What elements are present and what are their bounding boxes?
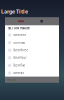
staticText: Item three	[13, 48, 28, 52]
staticText: Footer	[7, 78, 16, 81]
staticText: Item one	[13, 33, 26, 37]
button[interactable]: Item two	[5, 39, 59, 46]
staticText: Item four	[13, 56, 26, 59]
staticText: Item two	[13, 41, 25, 44]
staticText: SECTION HEADER	[8, 26, 30, 30]
button[interactable]: Item five	[5, 62, 59, 69]
staticText: Item six	[13, 71, 23, 75]
staticText: Large Title	[1, 8, 28, 15]
button[interactable]: Item three	[5, 46, 59, 54]
staticText: Item five	[13, 64, 25, 67]
button[interactable]: Item six	[5, 69, 59, 77]
button[interactable]: Item one	[5, 31, 59, 39]
button[interactable]: Item four	[5, 54, 59, 62]
